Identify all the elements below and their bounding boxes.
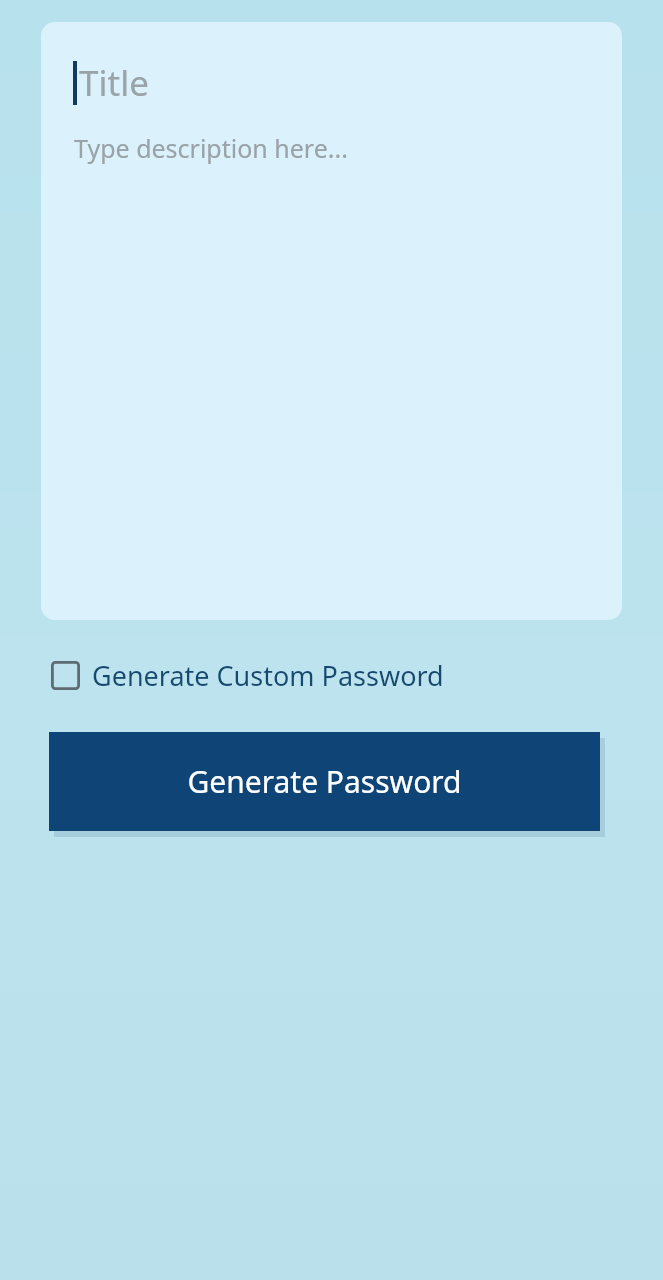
button[interactable]: Generate Password (49, 732, 600, 831)
button[interactable]: Generate Custom Password (50, 653, 444, 697)
staticText: Generate Password (187, 761, 462, 802)
button[interactable]: Title (41, 22, 622, 620)
staticText: Title (79, 59, 149, 107)
staticText: Type description here... (74, 131, 348, 165)
staticText: Generate Custom Password (92, 657, 444, 694)
